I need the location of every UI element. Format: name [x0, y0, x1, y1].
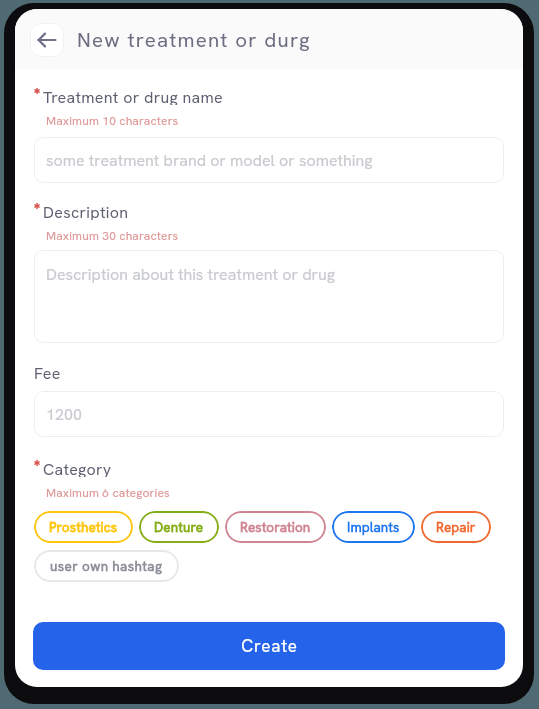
button[interactable]: Prosthetics	[34, 511, 133, 543]
button[interactable]: Implants	[332, 511, 415, 543]
button[interactable]: Denture	[139, 511, 219, 543]
staticText: Maximum 6 categories	[46, 485, 170, 501]
button[interactable]: Create	[33, 622, 505, 670]
staticText: Description	[43, 202, 129, 220]
button[interactable]: Back	[30, 23, 64, 57]
staticText: Category	[43, 459, 112, 477]
staticText: some treatment brand or model or somethi…	[46, 150, 373, 171]
staticText: Denture	[154, 518, 204, 536]
button[interactable]: Repair	[421, 511, 491, 543]
button[interactable]: some treatment brand or model or somethi…	[34, 137, 504, 183]
staticText: Create	[241, 635, 298, 657]
staticText: 1200	[46, 404, 82, 425]
staticText: Maximum 30 characters	[46, 228, 179, 244]
staticText: Implants	[347, 518, 400, 536]
button[interactable]: 1200	[34, 391, 504, 437]
staticText: user own hashtag	[50, 557, 163, 575]
staticText: Restoration	[240, 518, 311, 536]
staticText: Repair	[436, 518, 476, 536]
staticText: Description about this treatment or drug	[46, 264, 336, 285]
staticText: Prosthetics	[49, 518, 118, 536]
button[interactable]: Restoration	[225, 511, 326, 543]
staticText: Maximum 10 characters	[46, 113, 179, 129]
button[interactable]: user own hashtag	[34, 550, 179, 582]
staticText: Fee	[34, 363, 61, 381]
button[interactable]: Description about this treatment or drug	[34, 250, 504, 343]
staticText: Treatment or drug name	[43, 87, 223, 105]
staticText: New treatment or durg	[77, 26, 311, 53]
